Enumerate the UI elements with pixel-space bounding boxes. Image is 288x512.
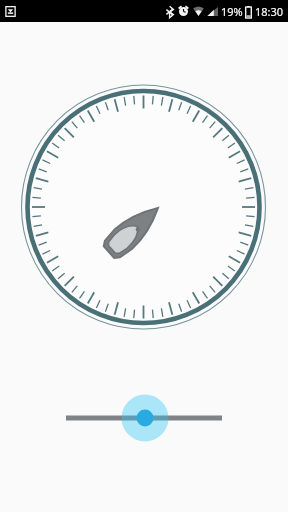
staticText: 18:30 bbox=[255, 4, 284, 19]
other: Notification bbox=[5, 6, 16, 17]
button[interactable]: Compass dial showing vessel heading bbox=[0, 22, 288, 512]
staticText: 19% bbox=[221, 4, 243, 19]
button[interactable]: Heading slider bbox=[0, 22, 288, 512]
